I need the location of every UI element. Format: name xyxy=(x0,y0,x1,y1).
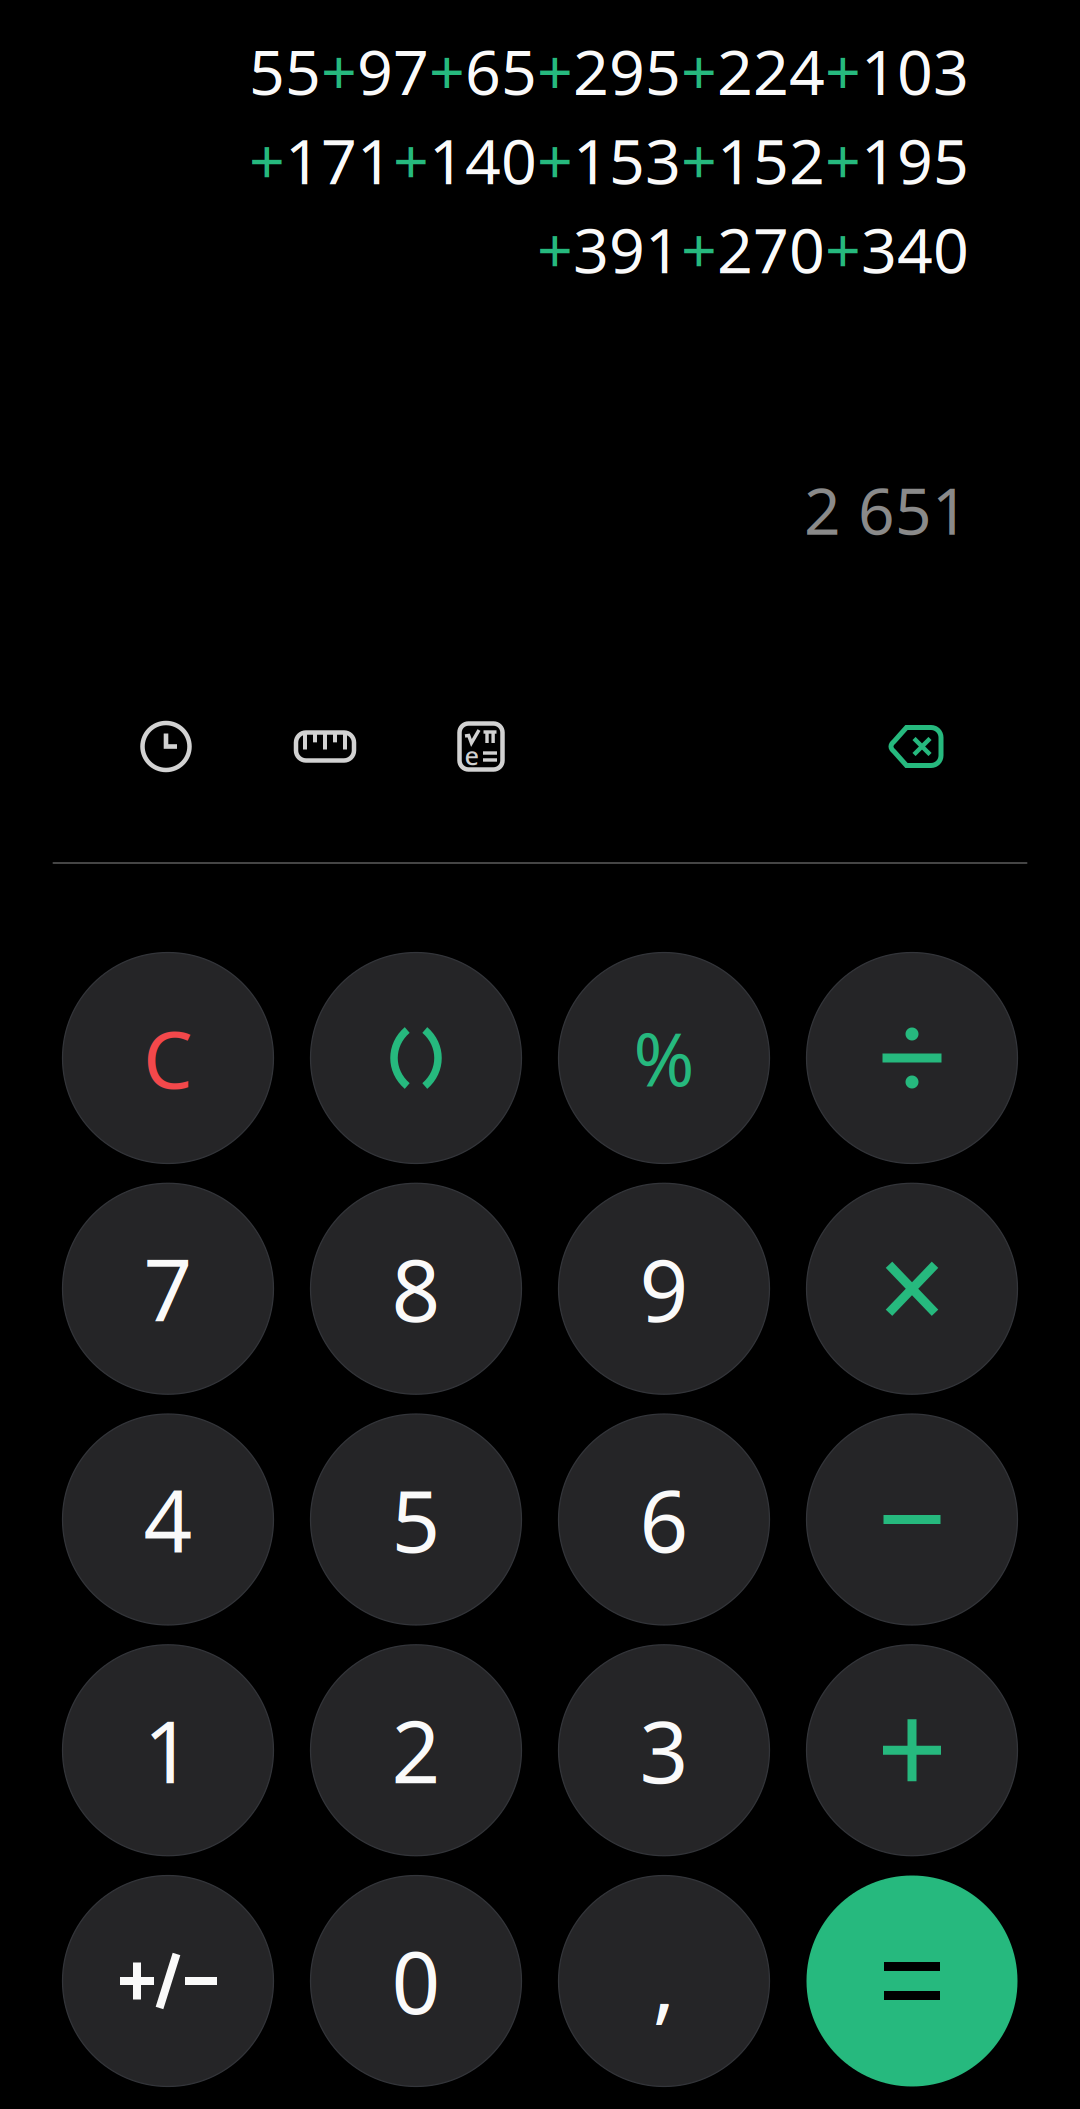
staticText: C xyxy=(143,1006,193,1110)
staticText: 2 651 xyxy=(804,467,969,552)
staticText: 224 xyxy=(717,29,825,112)
staticText: 340 xyxy=(861,207,969,291)
button[interactable]: History xyxy=(138,718,194,774)
staticText: 55 xyxy=(249,29,321,112)
staticText: + xyxy=(681,207,717,291)
staticText: 5 xyxy=(391,1463,440,1576)
staticText: 0 xyxy=(391,1924,440,2038)
staticText: + xyxy=(825,29,861,112)
staticText: 270 xyxy=(717,207,825,291)
staticText: 8 xyxy=(391,1232,440,1345)
button[interactable]: 4 xyxy=(62,1414,273,1625)
button[interactable]: Equals xyxy=(806,1875,1017,2086)
button[interactable]: Minus xyxy=(806,1414,1017,1625)
button[interactable]: , xyxy=(558,1875,769,2086)
button[interactable]: 5 xyxy=(310,1414,521,1625)
staticText: 7 xyxy=(143,1232,192,1345)
button[interactable]: 8 xyxy=(310,1183,521,1394)
staticText: 3 xyxy=(639,1694,688,1807)
staticText: 4 xyxy=(143,1463,192,1576)
staticText: + xyxy=(429,29,465,112)
staticText: + xyxy=(537,118,573,201)
staticText: % xyxy=(633,1009,694,1107)
staticText: e xyxy=(464,739,479,772)
button[interactable]: 3 xyxy=(558,1645,769,1856)
staticText: 2 xyxy=(391,1694,440,1807)
button[interactable]: 1 xyxy=(62,1645,273,1856)
staticText: + xyxy=(537,207,573,291)
button[interactable]: 2 xyxy=(310,1645,521,1856)
staticText: 1 xyxy=(143,1694,192,1807)
staticText: + xyxy=(249,118,285,201)
staticText: 295 xyxy=(573,29,681,112)
button[interactable]: 0 xyxy=(310,1875,521,2086)
staticText: 103 xyxy=(861,29,969,112)
staticText: + xyxy=(537,29,573,112)
button[interactable]: 7 xyxy=(62,1183,273,1394)
button[interactable]: 6 xyxy=(558,1414,769,1625)
staticText: + xyxy=(825,207,861,291)
button[interactable]: 9 xyxy=(558,1183,769,1394)
button[interactable]: Unit converter xyxy=(292,718,358,774)
staticText: 152 xyxy=(717,118,825,201)
staticText: 65 xyxy=(465,29,537,112)
button[interactable]: Toggle sign xyxy=(62,1875,273,2086)
button[interactable]: % xyxy=(558,952,769,1163)
staticText: 140 xyxy=(429,118,537,201)
staticText: + xyxy=(321,29,357,112)
staticText: 6 xyxy=(639,1463,688,1576)
button[interactable]: Divide xyxy=(806,952,1017,1163)
staticText: 153 xyxy=(573,118,681,201)
staticText: 195 xyxy=(861,118,969,201)
button[interactable]: C xyxy=(62,952,273,1163)
button[interactable]: Parentheses xyxy=(310,952,521,1163)
button[interactable]: Backspace xyxy=(884,718,946,774)
staticText: 171 xyxy=(285,118,393,201)
button[interactable]: Plus xyxy=(806,1645,1017,1856)
staticText: + xyxy=(825,118,861,201)
staticText: 9 xyxy=(639,1232,688,1345)
staticText: + xyxy=(393,118,429,201)
staticText: + xyxy=(681,118,717,201)
staticText: 97 xyxy=(357,29,429,112)
staticText: + xyxy=(681,29,717,112)
button[interactable]: Scientific calculator xyxy=(453,718,509,774)
staticText: 391 xyxy=(573,207,681,291)
staticText: , xyxy=(652,1924,675,2038)
button[interactable]: Multiply xyxy=(806,1183,1017,1394)
